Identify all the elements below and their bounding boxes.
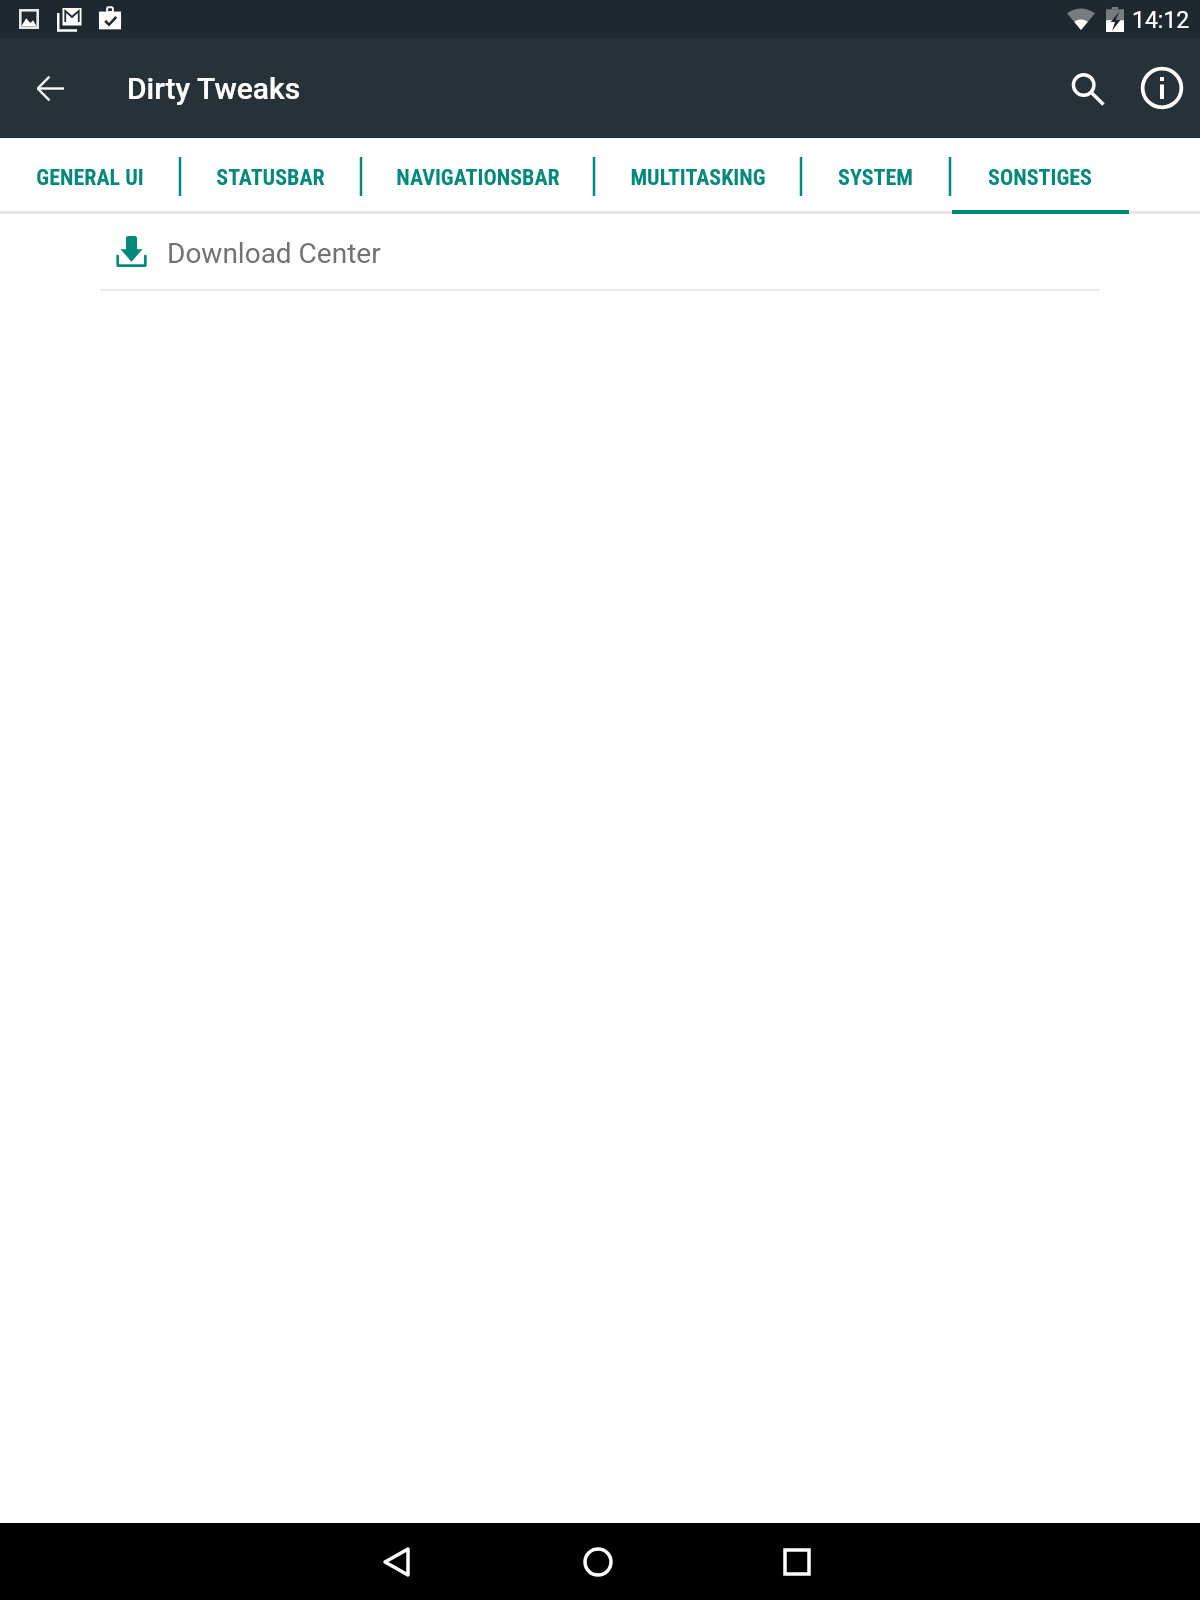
staticText: Download Center [167, 237, 381, 270]
button[interactable]: Search [1048, 50, 1124, 126]
staticText: SYSTEM [838, 165, 913, 191]
button[interactable]: SYSTEM [801, 138, 950, 217]
staticText: Dirty Tweaks [127, 71, 301, 106]
button[interactable]: Back [346, 1523, 446, 1600]
button[interactable]: GENERAL UI [0, 138, 180, 217]
staticText: MULTITASKING [630, 165, 766, 191]
button[interactable]: About [1124, 50, 1200, 126]
staticText: GENERAL UI [36, 165, 144, 191]
button[interactable]: NAVIGATIONSBAR [361, 138, 594, 217]
staticText: NAVIGATIONSBAR [396, 165, 560, 191]
button[interactable]: Home [548, 1523, 648, 1600]
button[interactable]: Recent apps [747, 1523, 847, 1600]
button[interactable]: Navigate up [14, 53, 85, 124]
button[interactable]: Download Center [0, 222, 1200, 289]
staticText: STATUSBAR [216, 165, 325, 191]
staticText: 14:12 [1132, 7, 1190, 34]
button[interactable]: STATUSBAR [180, 138, 361, 217]
button[interactable]: SONSTIGES [950, 138, 1130, 217]
staticText: SONSTIGES [988, 165, 1092, 191]
button[interactable]: MULTITASKING [594, 138, 801, 217]
